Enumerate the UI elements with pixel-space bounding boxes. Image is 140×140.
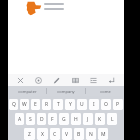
staticText: H xyxy=(74,116,78,123)
button[interactable]: Close xyxy=(16,76,25,85)
button[interactable]: I xyxy=(89,99,99,110)
staticText: P xyxy=(116,101,120,108)
staticText: J xyxy=(87,116,89,123)
button[interactable]: U xyxy=(77,99,87,110)
button[interactable]: D xyxy=(37,113,46,125)
button[interactable]: O xyxy=(101,99,111,110)
staticText: W xyxy=(22,101,27,108)
button[interactable]: Return xyxy=(107,76,116,85)
staticText: O xyxy=(104,101,108,108)
button[interactable]: Table xyxy=(71,76,80,85)
staticText: S xyxy=(29,116,32,123)
staticText: Q xyxy=(12,101,16,108)
button[interactable]: Emoji xyxy=(34,76,43,85)
staticText: C xyxy=(53,131,57,138)
button[interactable]: Y xyxy=(65,99,75,110)
staticText: Z xyxy=(28,131,31,138)
button[interactable]: Indent xyxy=(89,76,98,85)
button[interactable]: M xyxy=(98,128,108,140)
staticText: X xyxy=(41,131,44,138)
button[interactable]: Q xyxy=(9,99,18,110)
button[interactable]: R xyxy=(42,99,51,110)
staticText: computer xyxy=(18,89,37,94)
button[interactable]: K xyxy=(95,113,105,125)
button[interactable]: Draw xyxy=(52,76,61,85)
staticText: I xyxy=(93,101,95,108)
button[interactable]: V xyxy=(62,128,72,140)
staticText: T xyxy=(57,101,60,108)
button[interactable]: H xyxy=(71,113,81,125)
button[interactable]: T xyxy=(53,99,63,110)
button[interactable]: computer xyxy=(8,86,46,96)
button[interactable]: N xyxy=(86,128,96,140)
staticText: come xyxy=(100,89,111,94)
button[interactable]: P xyxy=(113,99,123,110)
button[interactable]: G xyxy=(59,113,69,125)
staticText: F xyxy=(51,116,54,123)
staticText: V xyxy=(65,131,69,138)
button[interactable]: E xyxy=(31,99,40,110)
button[interactable]: C xyxy=(50,128,60,140)
staticText: B xyxy=(77,131,81,138)
button[interactable]: F xyxy=(48,113,57,125)
staticText: R xyxy=(45,101,49,108)
button[interactable]: J xyxy=(83,113,93,125)
staticText: D xyxy=(40,116,44,123)
staticText: M xyxy=(101,131,106,138)
button[interactable]: X xyxy=(37,128,48,140)
staticText: G xyxy=(62,116,66,123)
staticText: L xyxy=(111,116,114,123)
staticText: company xyxy=(57,89,75,94)
staticText: Y xyxy=(69,101,72,108)
staticText: U xyxy=(80,101,84,108)
button[interactable]: come xyxy=(86,86,124,96)
staticText: E xyxy=(34,101,37,108)
button[interactable]: S xyxy=(26,113,35,125)
staticText: A xyxy=(18,116,22,123)
button[interactable]: company xyxy=(47,86,85,96)
staticText: N xyxy=(89,131,93,138)
button[interactable]: W xyxy=(20,99,29,110)
button[interactable]: B xyxy=(74,128,84,140)
button[interactable]: A xyxy=(15,113,24,125)
button[interactable]: L xyxy=(107,113,117,125)
staticText: K xyxy=(98,116,102,123)
button[interactable]: Z xyxy=(24,128,35,140)
